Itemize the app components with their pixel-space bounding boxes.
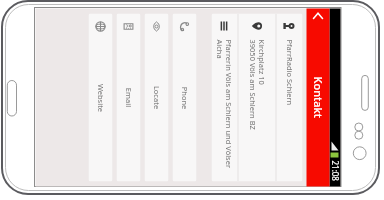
button[interactable]: Email	[116, 13, 140, 181]
button[interactable]: Back	[306, 8, 329, 21]
button[interactable]: Kirchplatz 10 39050 Völs am Schlern BZ	[238, 13, 275, 181]
button[interactable]: Website	[88, 13, 112, 181]
staticText: Locate	[151, 85, 161, 109]
staticText: 21:08	[329, 160, 340, 181]
button[interactable]: Locate	[144, 13, 168, 181]
staticText: Phone	[179, 86, 189, 109]
staticText: Email	[123, 87, 133, 107]
staticText: Pfarrerin Völs am Schlern und Völser Aic…	[214, 39, 233, 173]
staticText: Kontakt	[310, 76, 325, 118]
button[interactable]: Phone	[172, 13, 196, 181]
staticText: Website	[95, 83, 105, 112]
button[interactable]: Pfarrerin Völs am Schlern und Völser Aic…	[211, 13, 237, 181]
staticText: Kirchplatz 10 39050 Völs am Schlern BZ	[247, 39, 266, 130]
staticText: PfarrRadio Schlern	[284, 39, 294, 105]
button[interactable]: PfarrRadio Schlern	[276, 13, 302, 181]
